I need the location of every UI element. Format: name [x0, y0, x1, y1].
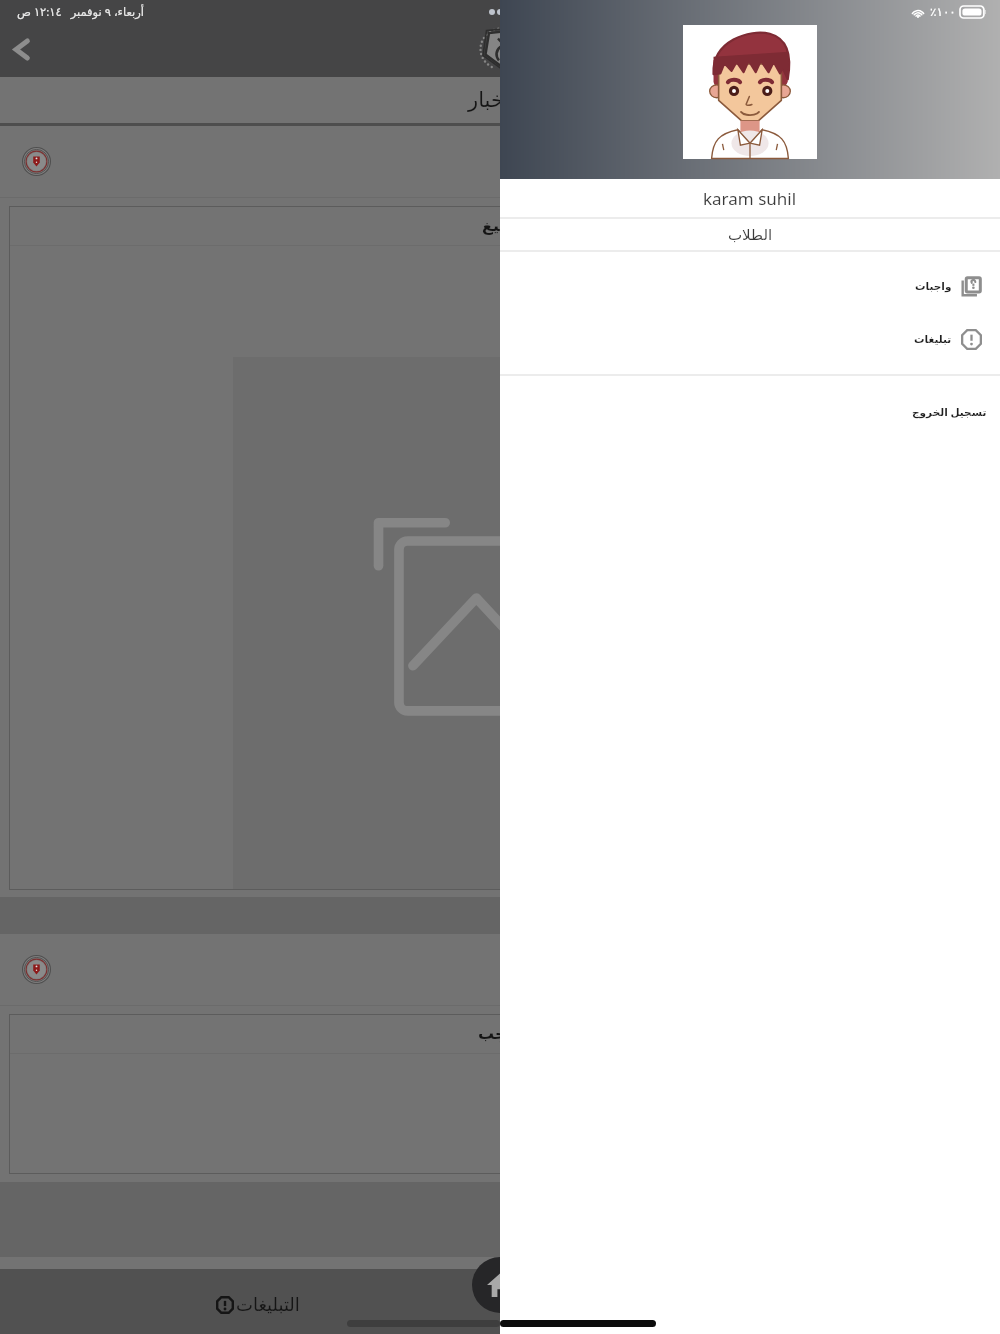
button[interactable]: تبليغ: [9, 206, 991, 890]
staticText: ٪١٠٠: [930, 5, 956, 19]
button[interactable]: تسجيل الخروج: [500, 392, 1000, 432]
button[interactable]: واجبات: [500, 266, 1000, 306]
button[interactable]: Home: [472, 1257, 528, 1313]
staticText: واجبات: [915, 280, 952, 292]
staticText: karam suhil: [703, 187, 797, 210]
button[interactable]: الطلاب: [500, 219, 1000, 250]
staticText: أربعاء، ٩ نوفمبر ١٢:١٤ ص: [17, 4, 145, 20]
button[interactable]: Back: [0, 28, 42, 70]
staticText: تسجيل الخروج: [912, 405, 987, 419]
button[interactable]: واجب: [9, 1014, 991, 1174]
staticText: الأخبار: [468, 88, 522, 112]
staticText: واجب: [478, 1024, 522, 1043]
button[interactable]: واجباتي: [500, 1269, 1000, 1334]
staticText: تبليغات: [914, 333, 952, 345]
staticText: تبليغ: [482, 216, 519, 235]
button[interactable]: karam suhil: [500, 179, 1000, 217]
staticText: التبليغات: [236, 1294, 300, 1315]
button[interactable]: تبليغات: [500, 319, 1000, 359]
staticText: الطلاب: [728, 226, 773, 243]
button[interactable]: التبليغات: [0, 1269, 500, 1334]
